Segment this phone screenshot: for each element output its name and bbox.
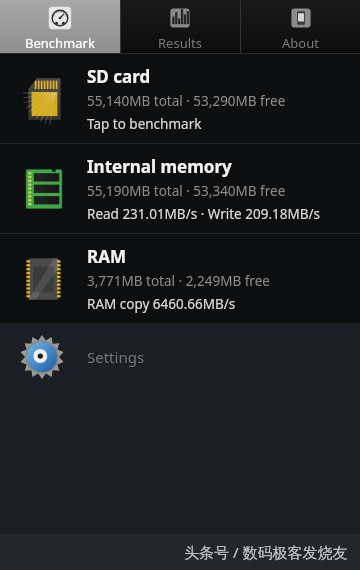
staticText: Tap to benchmark [87, 115, 202, 133]
staticText: 3,771MB total · 2,249MB free [87, 272, 270, 290]
staticText: Results [158, 34, 202, 52]
button[interactable]: RAM [0, 234, 360, 323]
button[interactable]: Internal memory [0, 144, 360, 233]
staticText: Benchmark [25, 34, 95, 52]
staticText: Settings [87, 347, 145, 367]
button[interactable]: About [240, 0, 360, 54]
staticText: 55,190MB total · 53,340MB free [87, 182, 286, 200]
staticText: Read 231.01MB/s · Write 209.18MB/s [87, 205, 320, 223]
button[interactable]: Settings [0, 323, 360, 391]
staticText: 头条号 / 数码极客发烧友 [184, 542, 348, 562]
staticText: Internal memory [87, 155, 232, 178]
staticText: RAM copy 6460.66MB/s [87, 295, 236, 313]
staticText: About [282, 34, 319, 52]
button[interactable]: Benchmark [0, 0, 120, 54]
staticText: 55,140MB total · 53,290MB free [87, 92, 286, 110]
button[interactable]: SD card [0, 54, 360, 143]
button[interactable]: Results [120, 0, 240, 54]
staticText: SD card [87, 65, 151, 88]
staticText: RAM [87, 245, 126, 268]
